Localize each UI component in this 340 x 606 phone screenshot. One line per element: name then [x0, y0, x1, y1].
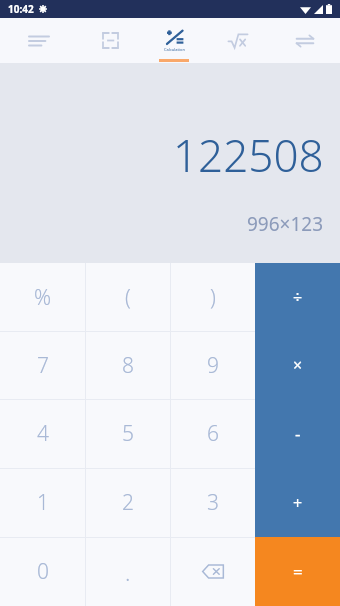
button[interactable]: 2: [85, 468, 170, 537]
button[interactable]: Calculation: [142, 18, 206, 63]
button[interactable]: 9: [170, 331, 255, 399]
staticText: ×: [293, 354, 303, 376]
staticText: %: [34, 283, 52, 312]
button[interactable]: (: [85, 263, 170, 331]
staticText: -: [295, 422, 301, 445]
button[interactable]: 0: [0, 537, 85, 606]
staticText: 3: [207, 488, 219, 517]
staticText: 2: [122, 488, 134, 517]
button[interactable]: .: [85, 537, 170, 606]
staticText: 9: [207, 351, 219, 380]
staticText: ÷: [293, 286, 303, 308]
button[interactable]: 4: [0, 399, 85, 468]
button[interactable]: Backspace: [170, 537, 255, 606]
button[interactable]: 5: [85, 399, 170, 468]
button[interactable]: Divide: [255, 263, 340, 331]
button[interactable]: Convert: [270, 18, 340, 63]
staticText: (: [125, 283, 131, 312]
staticText: =: [293, 560, 303, 583]
staticText: +: [293, 492, 303, 514]
staticText: 7: [37, 351, 49, 380]
staticText: 4: [37, 419, 49, 448]
staticText: Calculation: [164, 47, 185, 52]
staticText: 1: [37, 488, 49, 517]
button[interactable]: Minus: [255, 399, 340, 468]
staticText: 8: [122, 351, 134, 380]
button[interactable]: Plus: [255, 468, 340, 537]
staticText: ): [210, 283, 216, 312]
staticText: 10:42: [8, 2, 34, 16]
staticText: 5: [122, 419, 134, 448]
button[interactable]: ): [170, 263, 255, 331]
button[interactable]: 1: [0, 468, 85, 537]
button[interactable]: Scan: [78, 18, 142, 63]
staticText: 6: [207, 419, 219, 448]
button[interactable]: 8: [85, 331, 170, 399]
button[interactable]: Menu: [0, 18, 78, 63]
staticText: 0: [37, 557, 49, 586]
staticText: 122508: [173, 125, 324, 185]
button[interactable]: 7: [0, 331, 85, 399]
button[interactable]: Square root: [206, 18, 270, 63]
button[interactable]: Equals: [255, 537, 340, 606]
button[interactable]: Multiply: [255, 331, 340, 399]
button[interactable]: 3: [170, 468, 255, 537]
staticText: 996×123: [247, 211, 324, 237]
staticText: .: [125, 557, 131, 587]
button[interactable]: 6: [170, 399, 255, 468]
button[interactable]: %: [0, 263, 85, 331]
